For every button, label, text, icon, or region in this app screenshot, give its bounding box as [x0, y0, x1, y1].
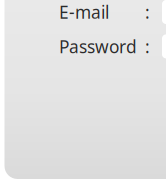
button[interactable]: Password	[162, 34, 166, 58]
staticText: E-mail	[59, 0, 109, 23]
staticText: :	[145, 0, 150, 23]
staticText: Password	[59, 35, 137, 58]
button[interactable]: E-mail	[162, 0, 166, 24]
staticText: :	[145, 35, 150, 58]
